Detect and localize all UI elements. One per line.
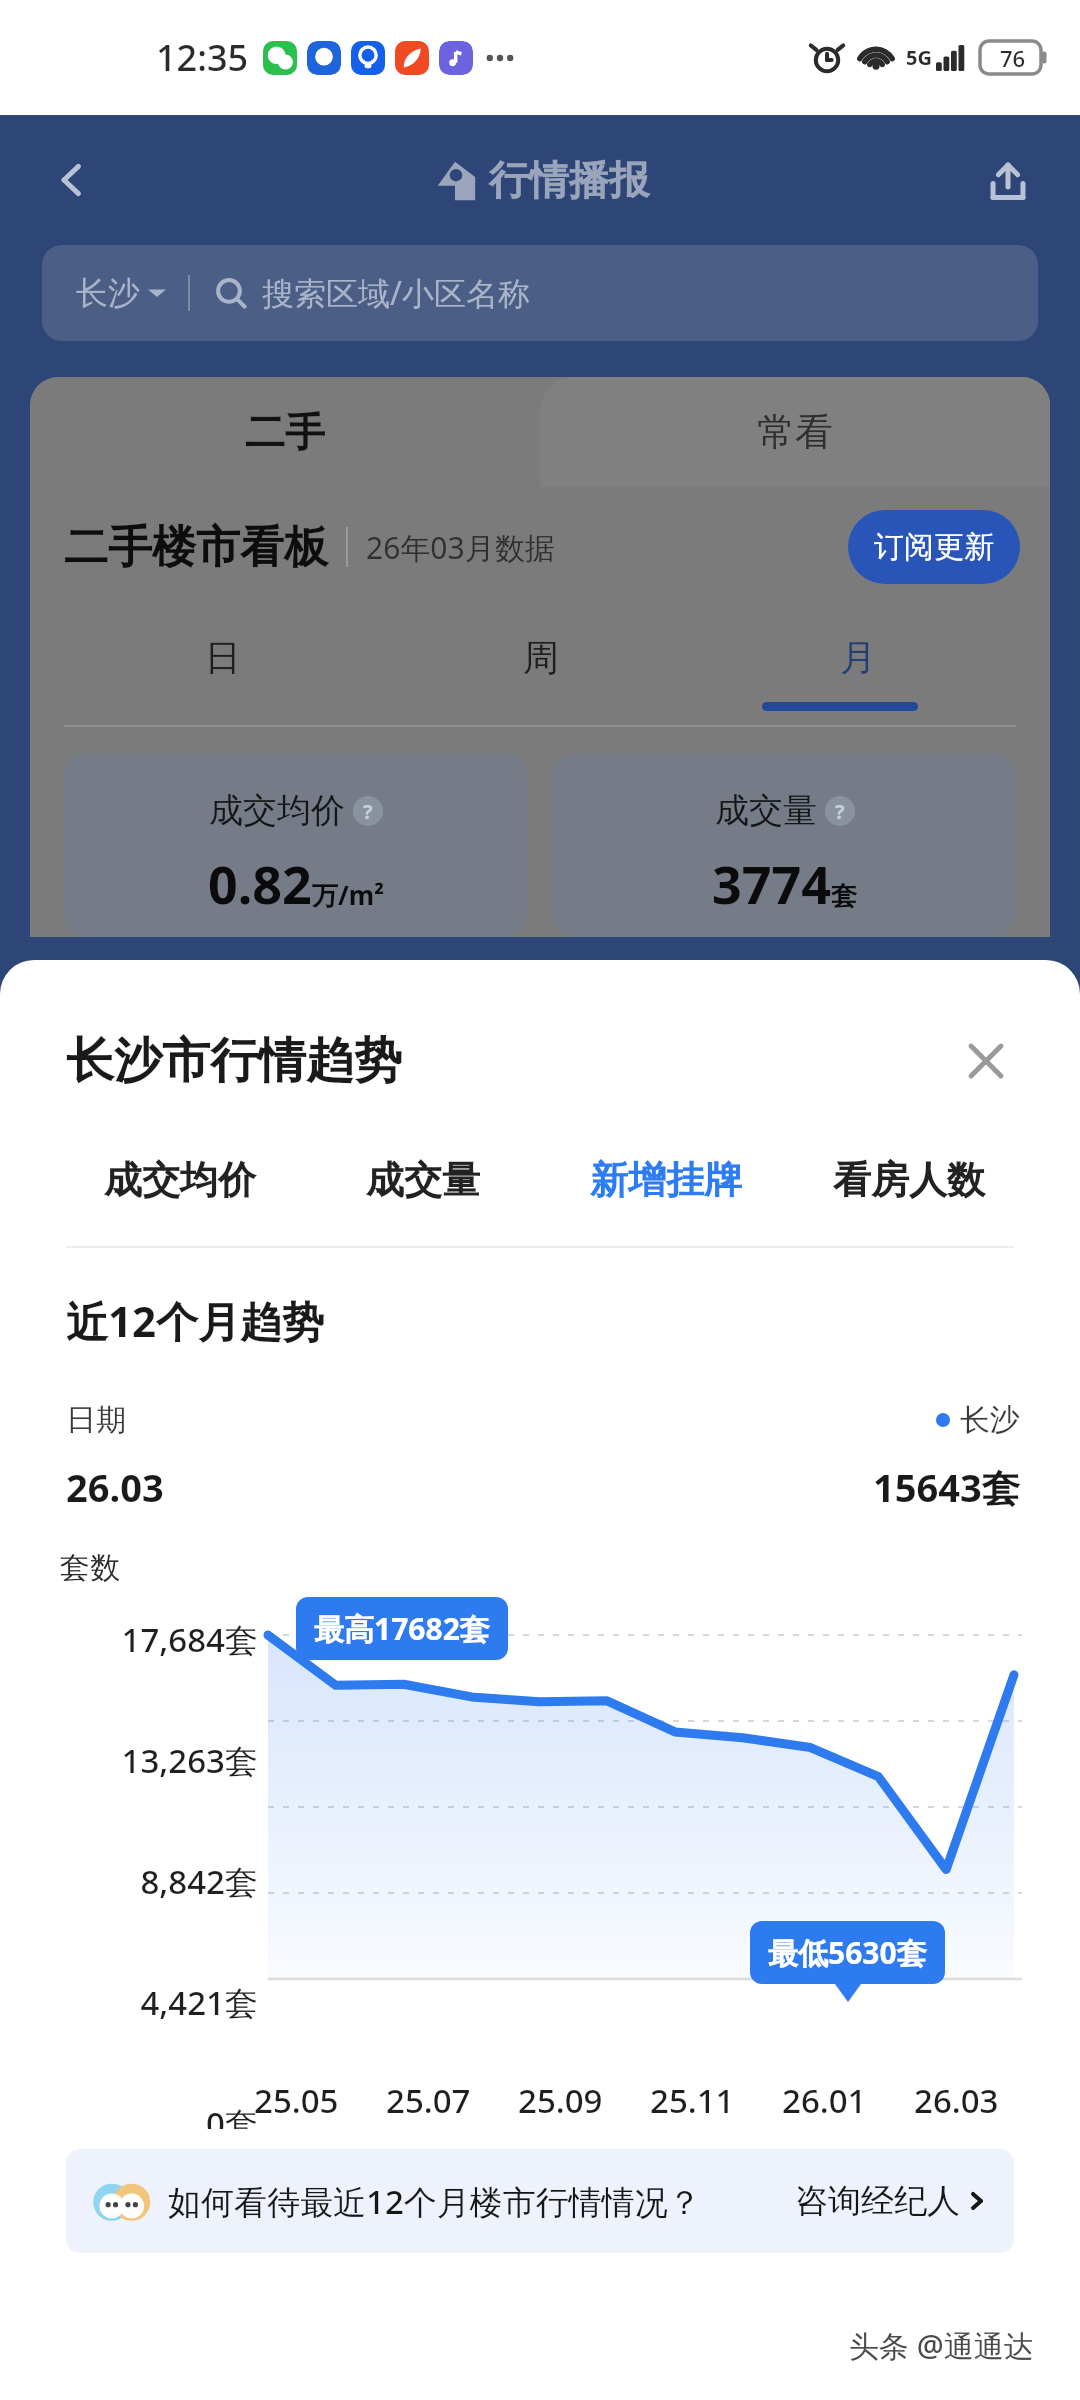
staticText: 0套 xyxy=(206,2101,258,2129)
button[interactable]: 成交均价 xyxy=(64,753,527,937)
staticText: 长沙 xyxy=(960,1401,1020,1439)
staticText: 套数 xyxy=(60,1549,120,1587)
staticText: 8,842套 xyxy=(140,1859,258,1904)
staticText: 最低5630套 xyxy=(768,1932,927,1973)
staticText: 26.03 xyxy=(914,2078,999,2123)
staticText: 常看 xyxy=(757,408,833,456)
staticText: 套 xyxy=(831,880,857,913)
button[interactable]: 成交量 xyxy=(553,753,1016,937)
staticText: 最高17682套 xyxy=(314,1608,490,1649)
staticText: 万/m² xyxy=(312,877,384,913)
staticText: 二手楼市看板 xyxy=(64,520,328,575)
staticText: 成交量 xyxy=(715,789,817,832)
staticText: 26.01 xyxy=(782,2078,867,2123)
staticText: 17,684套 xyxy=(121,1617,258,1662)
button[interactable]: 二手 xyxy=(30,377,540,487)
staticText: 咨询经纪人 xyxy=(795,2180,960,2222)
button[interactable]: Close xyxy=(950,1025,1022,1097)
button[interactable]: Share xyxy=(972,144,1044,216)
staticText: 成交均价 xyxy=(104,1156,256,1204)
button[interactable]: Back xyxy=(36,144,108,216)
staticText: 3774 xyxy=(712,848,831,919)
staticText: 25.09 xyxy=(518,2078,603,2123)
staticText: 13,263套 xyxy=(121,1738,258,1783)
staticText: 长沙市行情趋势 xyxy=(66,1031,402,1091)
button[interactable]: 成交量 xyxy=(301,1140,544,1220)
button[interactable]: 看房人数 xyxy=(787,1140,1030,1220)
staticText: 周 xyxy=(523,635,559,680)
button[interactable]: 常看 xyxy=(540,377,1050,487)
button[interactable]: 月 xyxy=(699,607,1016,707)
button[interactable]: 成交均价 xyxy=(58,1140,301,1220)
staticText: 26.03 xyxy=(66,1461,164,1513)
staticText: 如何看待最近12个月楼市行情情况？ xyxy=(168,2179,701,2224)
staticText: 新增挂牌 xyxy=(590,1156,742,1204)
staticText: 25.07 xyxy=(386,2078,471,2123)
staticText: 0.82 xyxy=(208,848,312,919)
staticText: 月 xyxy=(840,635,876,680)
staticText: 成交均价 xyxy=(209,789,345,832)
staticText: 25.11 xyxy=(650,2078,735,2123)
staticText: ? xyxy=(835,798,845,825)
staticText: 4,421套 xyxy=(140,1980,258,2025)
staticText: ? xyxy=(363,798,373,825)
staticText: 25.05 xyxy=(254,2078,339,2123)
staticText: 二手 xyxy=(245,407,325,457)
staticText: 76 xyxy=(1000,43,1026,73)
button[interactable]: 周 xyxy=(382,607,699,707)
staticText: 日 xyxy=(205,635,241,680)
button[interactable]: 如何看待最近12个月楼市行情情况？ xyxy=(66,2149,1014,2253)
staticText: 头条 @通通达 xyxy=(849,2325,1034,2366)
staticText: 搜索区域/小区名称 xyxy=(262,271,530,315)
staticText: 12:35 xyxy=(156,33,249,82)
staticText: 长沙 xyxy=(76,273,140,313)
button[interactable]: 新增挂牌 xyxy=(544,1140,787,1220)
button[interactable]: 日 xyxy=(64,607,382,707)
staticText: 26年03月数据 xyxy=(366,527,555,568)
button[interactable]: 订阅更新 xyxy=(848,510,1020,584)
staticText: 行情播报 xyxy=(489,155,649,205)
button[interactable]: 长沙 xyxy=(42,245,1038,341)
staticText: 5G xyxy=(906,44,932,71)
staticText: 15643套 xyxy=(873,1461,1020,1513)
staticText: 成交量 xyxy=(366,1156,480,1204)
staticText: 看房人数 xyxy=(833,1156,985,1204)
staticText: 日期 xyxy=(66,1401,126,1439)
staticText: 近12个月趋势 xyxy=(66,1292,325,1349)
staticText: 订阅更新 xyxy=(874,528,994,566)
